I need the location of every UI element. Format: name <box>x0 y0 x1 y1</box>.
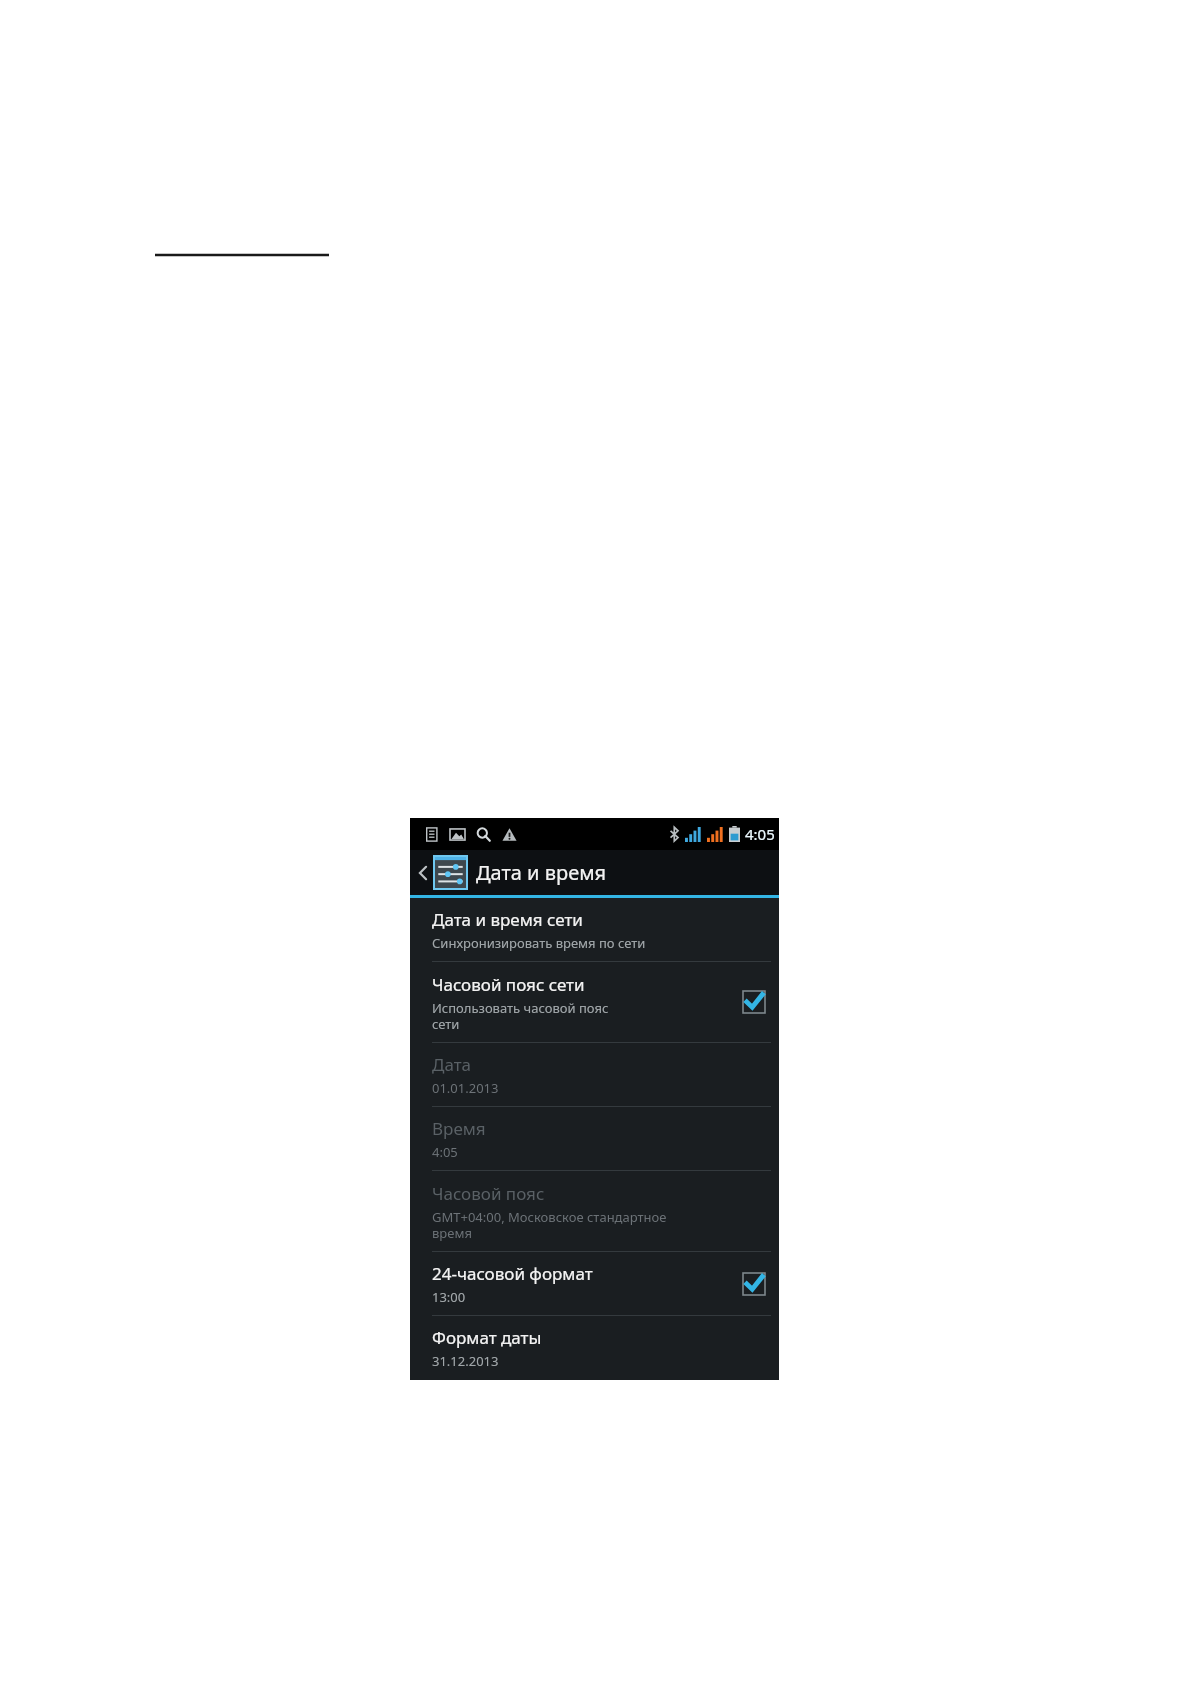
staticText: Дата <box>432 1053 472 1076</box>
staticText: 31.12.2013 <box>432 1352 499 1370</box>
button[interactable]: Toggle <box>743 991 765 1013</box>
staticText: 4:05 <box>432 1143 458 1161</box>
staticText: 01.01.2013 <box>432 1079 499 1097</box>
button[interactable]: Часовой пояс сети <box>410 962 779 1042</box>
staticText: Формат даты <box>432 1326 542 1349</box>
button[interactable]: Toggle <box>743 1273 765 1295</box>
staticText: Часовой пояс <box>432 1182 545 1205</box>
button[interactable]: Дата и время сети <box>410 898 779 961</box>
staticText: 24-часовой формат <box>432 1262 593 1285</box>
staticText: Время <box>432 1117 486 1140</box>
staticText: GMT+04:00, Московское стандартное время <box>432 1208 667 1241</box>
button[interactable]: 24-часовой формат <box>410 1252 779 1315</box>
staticText: Часовой пояс сети <box>432 973 585 996</box>
button[interactable]: Часовой пояс <box>410 1171 779 1251</box>
staticText: Дата и время сети <box>432 908 583 931</box>
button[interactable]: Время <box>410 1107 779 1170</box>
staticText: Синхронизировать время по сети <box>432 934 646 952</box>
button[interactable]: Формат даты <box>410 1316 779 1379</box>
button[interactable]: Дата <box>410 1043 779 1106</box>
button[interactable]: Back <box>410 850 779 895</box>
staticText: 13:00 <box>432 1288 466 1306</box>
staticText: Использовать часовой пояс сети <box>432 999 609 1032</box>
staticText: 4:05 <box>745 824 775 844</box>
staticText: Дата и время <box>476 859 607 886</box>
